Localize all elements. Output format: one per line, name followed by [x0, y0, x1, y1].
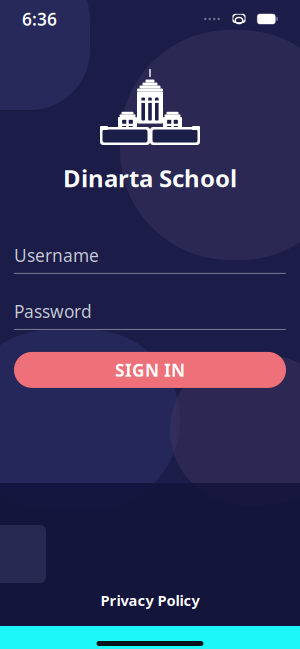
staticText: Dinarta School	[63, 162, 237, 194]
button[interactable]: SIGN IN	[14, 352, 286, 388]
staticText: 6:36	[22, 7, 57, 30]
button[interactable]: Privacy Policy	[90, 584, 209, 616]
staticText: SIGN IN	[115, 358, 185, 381]
staticText: Password	[14, 300, 92, 323]
staticText: Username	[14, 244, 99, 267]
staticText: Privacy Policy	[100, 590, 199, 610]
